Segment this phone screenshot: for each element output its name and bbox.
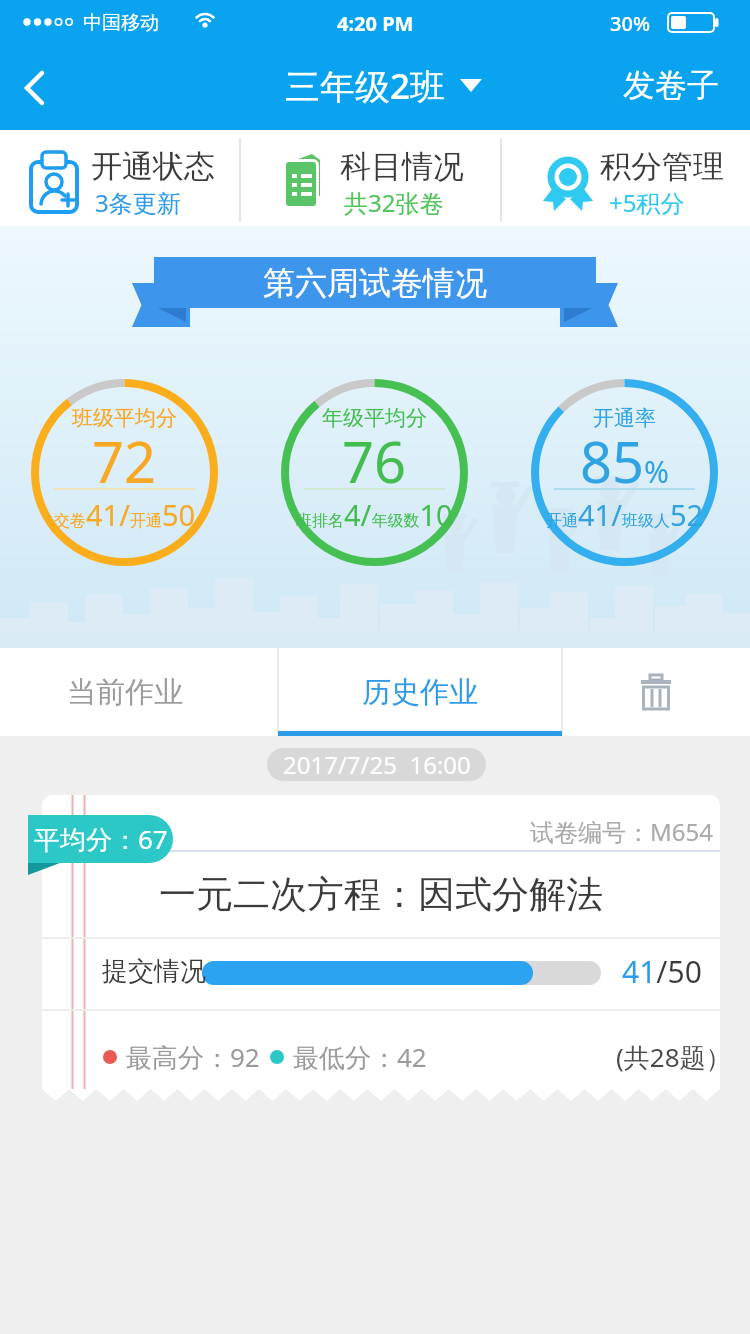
staticText: 一元二次方程：因式分解法 <box>159 871 603 918</box>
staticText: 试卷编号：M654 <box>530 815 713 848</box>
staticText: 中国移动 <box>83 11 159 35</box>
button[interactable]: 三年级2班 <box>285 62 482 110</box>
staticText: 历史作业 <box>362 674 478 711</box>
staticText: 72 <box>92 423 157 499</box>
button[interactable] <box>562 648 750 736</box>
staticText: 2017/7/25 16:00 <box>283 748 471 781</box>
staticText: 当前作业 <box>67 674 183 711</box>
button[interactable]: 积分管理 <box>501 130 750 226</box>
staticText: 三年级2班 <box>285 62 446 110</box>
button[interactable]: 发卷子 <box>616 58 726 112</box>
button[interactable]: 当前作业 <box>0 648 278 736</box>
button[interactable]: 科目情况 <box>240 130 501 226</box>
button[interactable] <box>14 66 58 110</box>
button[interactable]: 开通状态 <box>0 130 240 226</box>
staticText: 最高分：92 <box>126 1039 260 1075</box>
staticText: 平均分：67 <box>34 821 168 857</box>
staticText: 交卷41/开通50 <box>54 495 196 534</box>
button[interactable]: 试卷编号：M654 <box>42 795 720 1089</box>
staticText: 积分管理 <box>600 147 724 186</box>
staticText: 第六周试卷情况 <box>263 263 487 303</box>
staticText: 85% <box>580 423 669 499</box>
staticText: 最低分：42 <box>293 1039 427 1075</box>
button[interactable]: 平均分：67 <box>28 815 173 863</box>
staticText: 开通状态 <box>91 147 215 186</box>
staticText: 4:20 PM <box>337 10 414 37</box>
staticText: 开通率 <box>593 405 656 431</box>
staticText: 发卷子 <box>623 65 719 105</box>
staticText: 76 <box>342 423 407 499</box>
staticText: 3条更新 <box>95 186 181 219</box>
staticText: 科目情况 <box>340 147 464 186</box>
staticText: 班排名4/年级数10 <box>296 495 453 534</box>
staticText: +5积分 <box>609 186 685 219</box>
staticText: (共28题） <box>616 1039 720 1075</box>
staticText: 班级平均分 <box>72 405 177 431</box>
staticText: 30% <box>610 10 650 37</box>
staticText: 年级平均分 <box>322 405 427 431</box>
button[interactable]: 2017/7/25 16:00 <box>267 748 486 781</box>
staticText: 提交情况 <box>102 955 206 988</box>
staticText: 共32张卷 <box>344 186 444 219</box>
staticText: 41/50 <box>622 951 702 992</box>
staticText: 开通41/班级人52 <box>546 495 704 534</box>
button[interactable]: 历史作业 <box>278 648 562 736</box>
